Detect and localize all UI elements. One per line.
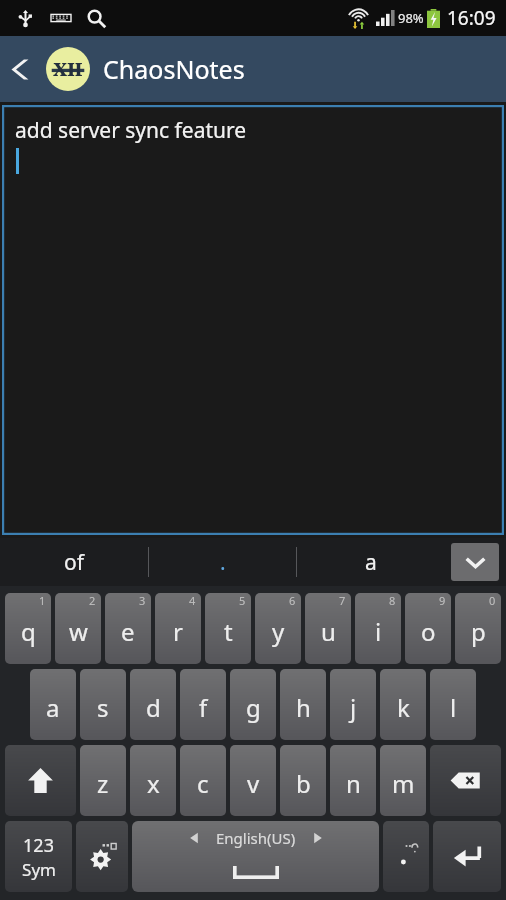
button[interactable]: 2 <box>55 593 101 664</box>
button[interactable]: b <box>280 745 326 816</box>
button[interactable]: 0 <box>455 593 501 664</box>
button[interactable]: x <box>130 745 176 816</box>
staticText: a <box>46 691 60 724</box>
button[interactable]: 6 <box>255 593 301 664</box>
staticText: x <box>147 767 160 800</box>
button[interactable]: Period <box>383 821 429 892</box>
button[interactable]: 5 <box>205 593 251 664</box>
staticText: o <box>421 615 436 648</box>
button[interactable]: Shift <box>5 745 76 816</box>
staticText: c <box>197 767 209 800</box>
staticText: a <box>365 548 377 577</box>
staticText: 9 <box>439 593 446 608</box>
button[interactable]: Hide suggestions <box>451 543 499 581</box>
staticText: u <box>321 615 336 648</box>
button[interactable]: a <box>297 538 444 586</box>
button[interactable]: m <box>380 745 426 816</box>
button[interactable]: Space, English (US) <box>132 821 379 892</box>
staticText: 16:09 <box>447 5 496 31</box>
staticText: 98% <box>398 9 424 27</box>
staticText: y <box>272 615 285 648</box>
staticText: w <box>69 615 88 648</box>
staticText: k <box>397 691 410 724</box>
staticText: g <box>246 691 261 724</box>
button[interactable]: k <box>380 669 426 740</box>
button[interactable]: 7 <box>305 593 351 664</box>
button[interactable]: j <box>330 669 376 740</box>
staticText: s <box>97 691 109 724</box>
staticText: . <box>220 548 226 577</box>
staticText: add server sync feature <box>15 116 247 145</box>
staticText: v <box>247 767 260 800</box>
staticText: t <box>224 615 233 648</box>
staticText: English(US) <box>216 828 296 848</box>
button[interactable]: 8 <box>355 593 401 664</box>
staticText: q <box>21 615 36 648</box>
button[interactable]: 1 <box>5 593 51 664</box>
staticText: d <box>146 691 161 724</box>
button[interactable]: c <box>180 745 226 816</box>
button[interactable]: 3 <box>105 593 151 664</box>
staticText: of <box>64 548 84 577</box>
button[interactable]: s <box>80 669 126 740</box>
staticText: 3 <box>139 593 146 608</box>
staticText: i <box>375 615 382 648</box>
button[interactable]: z <box>80 745 126 816</box>
button[interactable]: . <box>149 538 296 586</box>
staticText: r <box>173 615 183 648</box>
button[interactable]: Backspace <box>430 745 501 816</box>
staticText: l <box>450 691 457 724</box>
staticText: b <box>296 767 311 800</box>
staticText: Sym <box>22 858 56 881</box>
button[interactable]: h <box>280 669 326 740</box>
button[interactable]: of <box>0 538 148 586</box>
button[interactable]: 123 <box>5 821 72 892</box>
staticText: 0 <box>489 593 496 608</box>
staticText: 2 <box>89 593 96 608</box>
staticText: j <box>350 691 357 724</box>
staticText: XH <box>53 57 83 82</box>
staticText: z <box>97 767 109 800</box>
button[interactable]: f <box>180 669 226 740</box>
button[interactable]: n <box>330 745 376 816</box>
button[interactable]: Enter <box>433 821 501 892</box>
button[interactable]: add server sync feature <box>2 105 504 535</box>
button[interactable]: a <box>30 669 76 740</box>
staticText: f <box>199 691 208 724</box>
button[interactable]: g <box>230 669 276 740</box>
button[interactable]: Keyboard settings <box>76 821 128 892</box>
staticText: 8 <box>389 593 396 608</box>
button[interactable]: ChaosNotes icon <box>44 45 92 93</box>
staticText: 7 <box>339 593 346 608</box>
staticText: ChaosNotes <box>103 52 245 86</box>
button[interactable]: 4 <box>155 593 201 664</box>
staticText: n <box>346 767 361 800</box>
staticText: 5 <box>239 593 246 608</box>
button[interactable]: d <box>130 669 176 740</box>
button[interactable]: l <box>430 669 476 740</box>
button[interactable]: Navigate up <box>0 36 44 102</box>
button[interactable]: 9 <box>405 593 451 664</box>
staticText: 6 <box>289 593 296 608</box>
button[interactable]: v <box>230 745 276 816</box>
staticText: 4 <box>189 593 196 608</box>
staticText: e <box>121 615 135 648</box>
staticText: p <box>471 615 486 648</box>
staticText: m <box>392 767 415 800</box>
staticText: 1 <box>39 593 46 608</box>
staticText: 123 <box>23 833 54 858</box>
staticText: h <box>296 691 311 724</box>
